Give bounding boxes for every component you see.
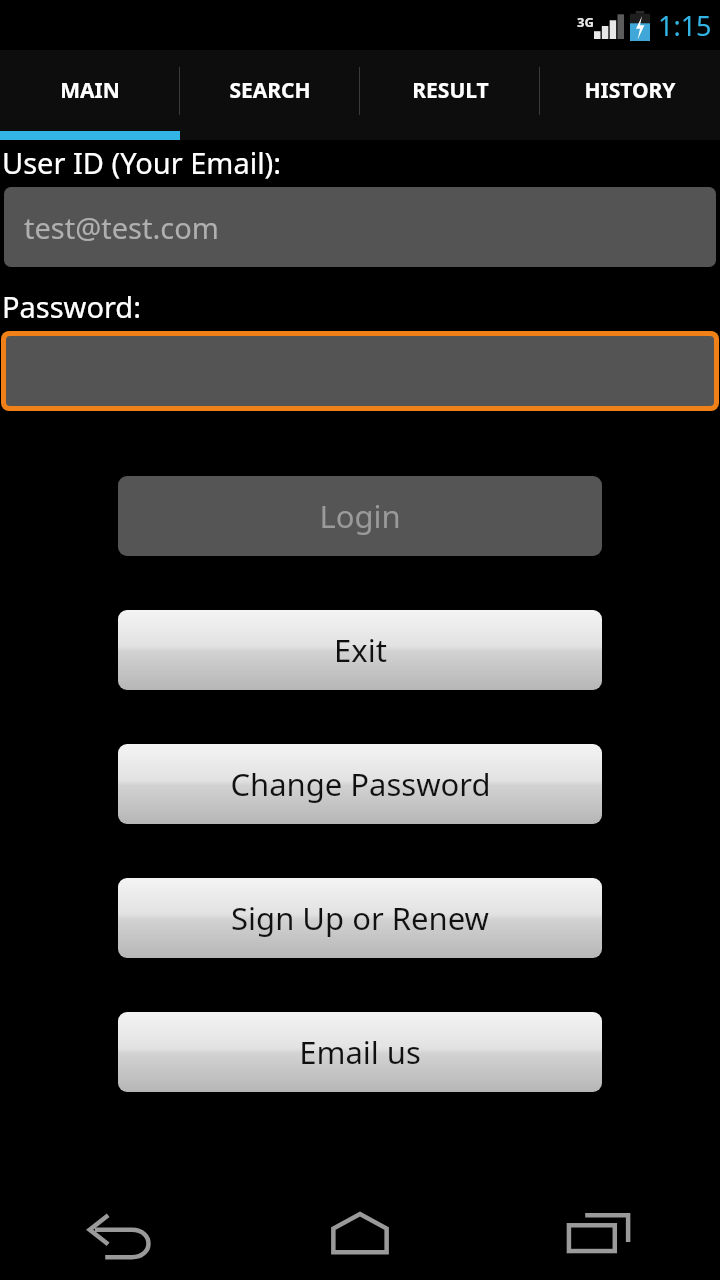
staticText: RESULT xyxy=(412,76,489,105)
button[interactable]: HISTORY xyxy=(540,50,720,131)
staticText: HISTORY xyxy=(584,76,676,105)
button[interactable]: Exit xyxy=(118,610,602,690)
staticText: Exit xyxy=(334,629,387,671)
staticText: User ID (Your Email): xyxy=(2,143,282,182)
button[interactable]: MAIN xyxy=(0,50,180,131)
button[interactable]: Login xyxy=(118,476,602,556)
staticText: Password: xyxy=(2,287,141,326)
button[interactable]: Email us xyxy=(118,1012,602,1092)
staticText: MAIN xyxy=(60,76,120,105)
button[interactable]: Recent apps xyxy=(480,1184,720,1280)
staticText: Sign Up or Renew xyxy=(231,897,489,939)
button[interactable]: RESULT xyxy=(360,50,540,131)
staticText: Email us xyxy=(299,1031,421,1073)
button[interactable]: Change Password xyxy=(118,744,602,824)
button[interactable]: Sign Up or Renew xyxy=(118,878,602,958)
staticText: Change Password xyxy=(230,763,491,805)
staticText: SEARCH xyxy=(229,76,311,105)
staticText: 3G xyxy=(577,13,594,31)
button[interactable]: test@test.com xyxy=(4,187,716,267)
button[interactable]: SEARCH xyxy=(180,50,360,131)
staticText: test@test.com xyxy=(24,208,219,247)
staticText: Login xyxy=(319,495,401,537)
staticText: 1:15 xyxy=(658,7,712,44)
button[interactable]: Back xyxy=(0,1184,240,1280)
button[interactable]: Home xyxy=(240,1184,480,1280)
